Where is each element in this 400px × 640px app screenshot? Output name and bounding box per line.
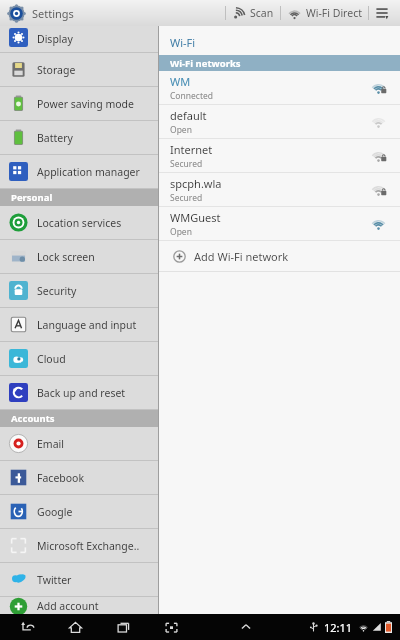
staticText: Twitter (37, 573, 72, 587)
staticText: Scan (250, 6, 274, 20)
button[interactable]: Application manager (0, 155, 159, 188)
staticText: Application manager (37, 165, 140, 179)
staticText: Accounts (11, 412, 55, 425)
button[interactable]: Twitter (0, 563, 159, 596)
staticText: Wi-Fi networks (170, 57, 241, 70)
staticText: default (170, 108, 207, 123)
button[interactable]: Cloud (0, 342, 159, 375)
button[interactable]: Display (0, 26, 159, 52)
button[interactable]: Internet (159, 139, 400, 172)
button[interactable]: Home (62, 614, 88, 640)
button[interactable]: Settings (6, 5, 76, 22)
staticText: Connected (170, 90, 213, 102)
staticText: Facebook (37, 471, 85, 485)
button[interactable]: Recents (110, 614, 136, 640)
staticText: spcph.wla (170, 176, 222, 191)
button[interactable]: Microsoft Exchange.. (0, 529, 159, 562)
button[interactable]: Screenshot (158, 614, 184, 640)
button[interactable]: Add account (0, 597, 159, 614)
staticText: Battery (37, 131, 73, 145)
button[interactable]: WM (159, 71, 400, 104)
staticText: Google (37, 505, 73, 519)
staticText: Wi-Fi (170, 35, 196, 50)
staticText: WM (170, 74, 191, 89)
staticText: Open (170, 226, 192, 238)
staticText: Location services (37, 216, 122, 230)
button[interactable]: Language and input (0, 308, 159, 341)
staticText: Wi-Fi Direct (306, 6, 362, 20)
button[interactable]: Show notifications (234, 615, 258, 639)
staticText: Language and input (37, 318, 137, 332)
button[interactable]: More options (369, 0, 395, 26)
staticText: Storage (37, 63, 76, 77)
staticText: Security (37, 284, 77, 298)
button[interactable]: Back (14, 614, 40, 640)
button[interactable]: Scan (226, 0, 280, 26)
staticText: Add Wi-Fi network (194, 249, 289, 264)
staticText: Settings (32, 6, 74, 21)
button[interactable]: Facebook (0, 461, 159, 494)
staticText: Back up and reset (37, 386, 126, 400)
staticText: Lock screen (37, 250, 95, 264)
staticText: Internet (170, 142, 213, 157)
button[interactable]: Security (0, 274, 159, 307)
button[interactable]: Email (0, 427, 159, 460)
staticText: Cloud (37, 352, 66, 366)
button[interactable]: Battery (0, 121, 159, 154)
staticText: Secured (170, 192, 203, 204)
button[interactable]: Google (0, 495, 159, 528)
button[interactable]: Location services (0, 206, 159, 239)
button[interactable]: Back up and reset (0, 376, 159, 409)
staticText: Display (37, 32, 73, 46)
button[interactable]: Storage (0, 53, 159, 86)
button[interactable]: Power saving mode (0, 87, 159, 120)
staticText: Secured (170, 158, 203, 170)
staticText: Personal (11, 191, 53, 204)
button[interactable]: Add Wi-Fi network (159, 241, 400, 271)
staticText: WMGuest (170, 210, 221, 225)
staticText: Email (37, 437, 64, 451)
staticText: 12:11 (324, 620, 353, 635)
staticText: Microsoft Exchange.. (37, 539, 140, 553)
staticText: Open (170, 124, 192, 136)
button[interactable]: WMGuest (159, 207, 400, 240)
button[interactable]: default (159, 105, 400, 138)
button[interactable]: Lock screen (0, 240, 159, 273)
staticText: Power saving mode (37, 97, 134, 111)
staticText: Add account (37, 599, 99, 613)
button[interactable]: Wi-Fi Direct (281, 0, 368, 26)
button[interactable]: spcph.wla (159, 173, 400, 206)
